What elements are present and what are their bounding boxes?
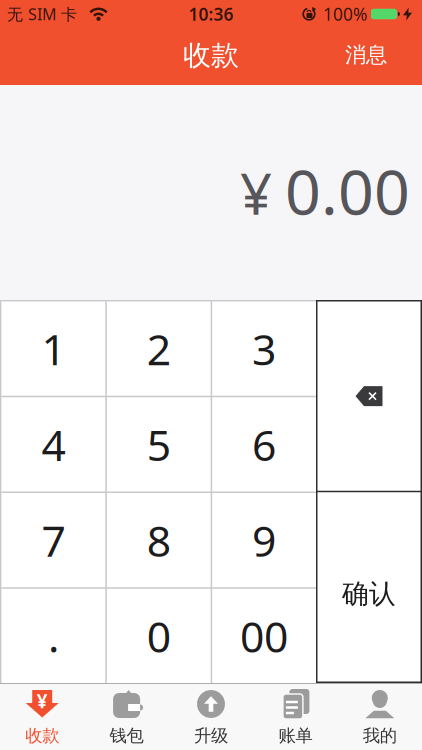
button[interactable]: 钱包 bbox=[84, 684, 169, 750]
staticText: 收款 bbox=[183, 38, 239, 73]
staticText: 消息 bbox=[345, 42, 387, 68]
button[interactable]: 0 bbox=[107, 589, 211, 683]
staticText: 7 bbox=[41, 512, 65, 568]
button[interactable]: 00 bbox=[212, 589, 316, 683]
staticText: ¥ bbox=[240, 156, 272, 230]
button[interactable]: 账单 bbox=[253, 684, 338, 750]
staticText: 0.00 bbox=[285, 149, 410, 232]
staticText: ¥ bbox=[37, 689, 48, 713]
staticText: 收款 bbox=[25, 725, 59, 746]
staticText: 无 SIM 卡 bbox=[7, 3, 77, 25]
button[interactable]: 升级 bbox=[169, 684, 253, 750]
staticText: 钱包 bbox=[110, 725, 144, 746]
staticText: . bbox=[48, 607, 59, 664]
staticText: 3 bbox=[252, 320, 276, 377]
staticText: 100% bbox=[323, 2, 367, 25]
staticText: 5 bbox=[147, 416, 171, 473]
button[interactable]: 删除 bbox=[317, 301, 420, 491]
button[interactable]: 7 bbox=[1, 493, 105, 587]
staticText: 4 bbox=[41, 416, 65, 473]
button[interactable]: 8 bbox=[107, 493, 211, 587]
button[interactable]: 6 bbox=[212, 397, 316, 491]
button[interactable]: 消息 bbox=[345, 42, 422, 68]
staticText: 00 bbox=[240, 607, 288, 664]
staticText: 0 bbox=[147, 607, 171, 664]
button[interactable]: 我的 bbox=[338, 684, 422, 750]
staticText: 1 bbox=[41, 320, 65, 377]
button[interactable]: 确认 bbox=[317, 492, 420, 681]
button[interactable]: 5 bbox=[107, 397, 211, 491]
button[interactable]: 2 bbox=[107, 301, 211, 396]
staticText: 10:36 bbox=[188, 2, 233, 25]
staticText: 确认 bbox=[342, 577, 396, 610]
staticText: 我的 bbox=[363, 725, 397, 746]
staticText: 升级 bbox=[194, 725, 228, 746]
staticText: 8 bbox=[147, 512, 171, 568]
staticText: 账单 bbox=[278, 725, 312, 746]
button[interactable]: ¥ bbox=[0, 684, 84, 750]
button[interactable]: . bbox=[1, 589, 105, 683]
button[interactable]: 9 bbox=[212, 493, 316, 587]
button[interactable]: 4 bbox=[1, 397, 105, 491]
staticText: 6 bbox=[252, 416, 276, 473]
staticText: 2 bbox=[147, 320, 171, 377]
button[interactable]: 1 bbox=[1, 301, 105, 396]
button[interactable]: 3 bbox=[212, 301, 316, 396]
staticText: 9 bbox=[252, 512, 276, 568]
